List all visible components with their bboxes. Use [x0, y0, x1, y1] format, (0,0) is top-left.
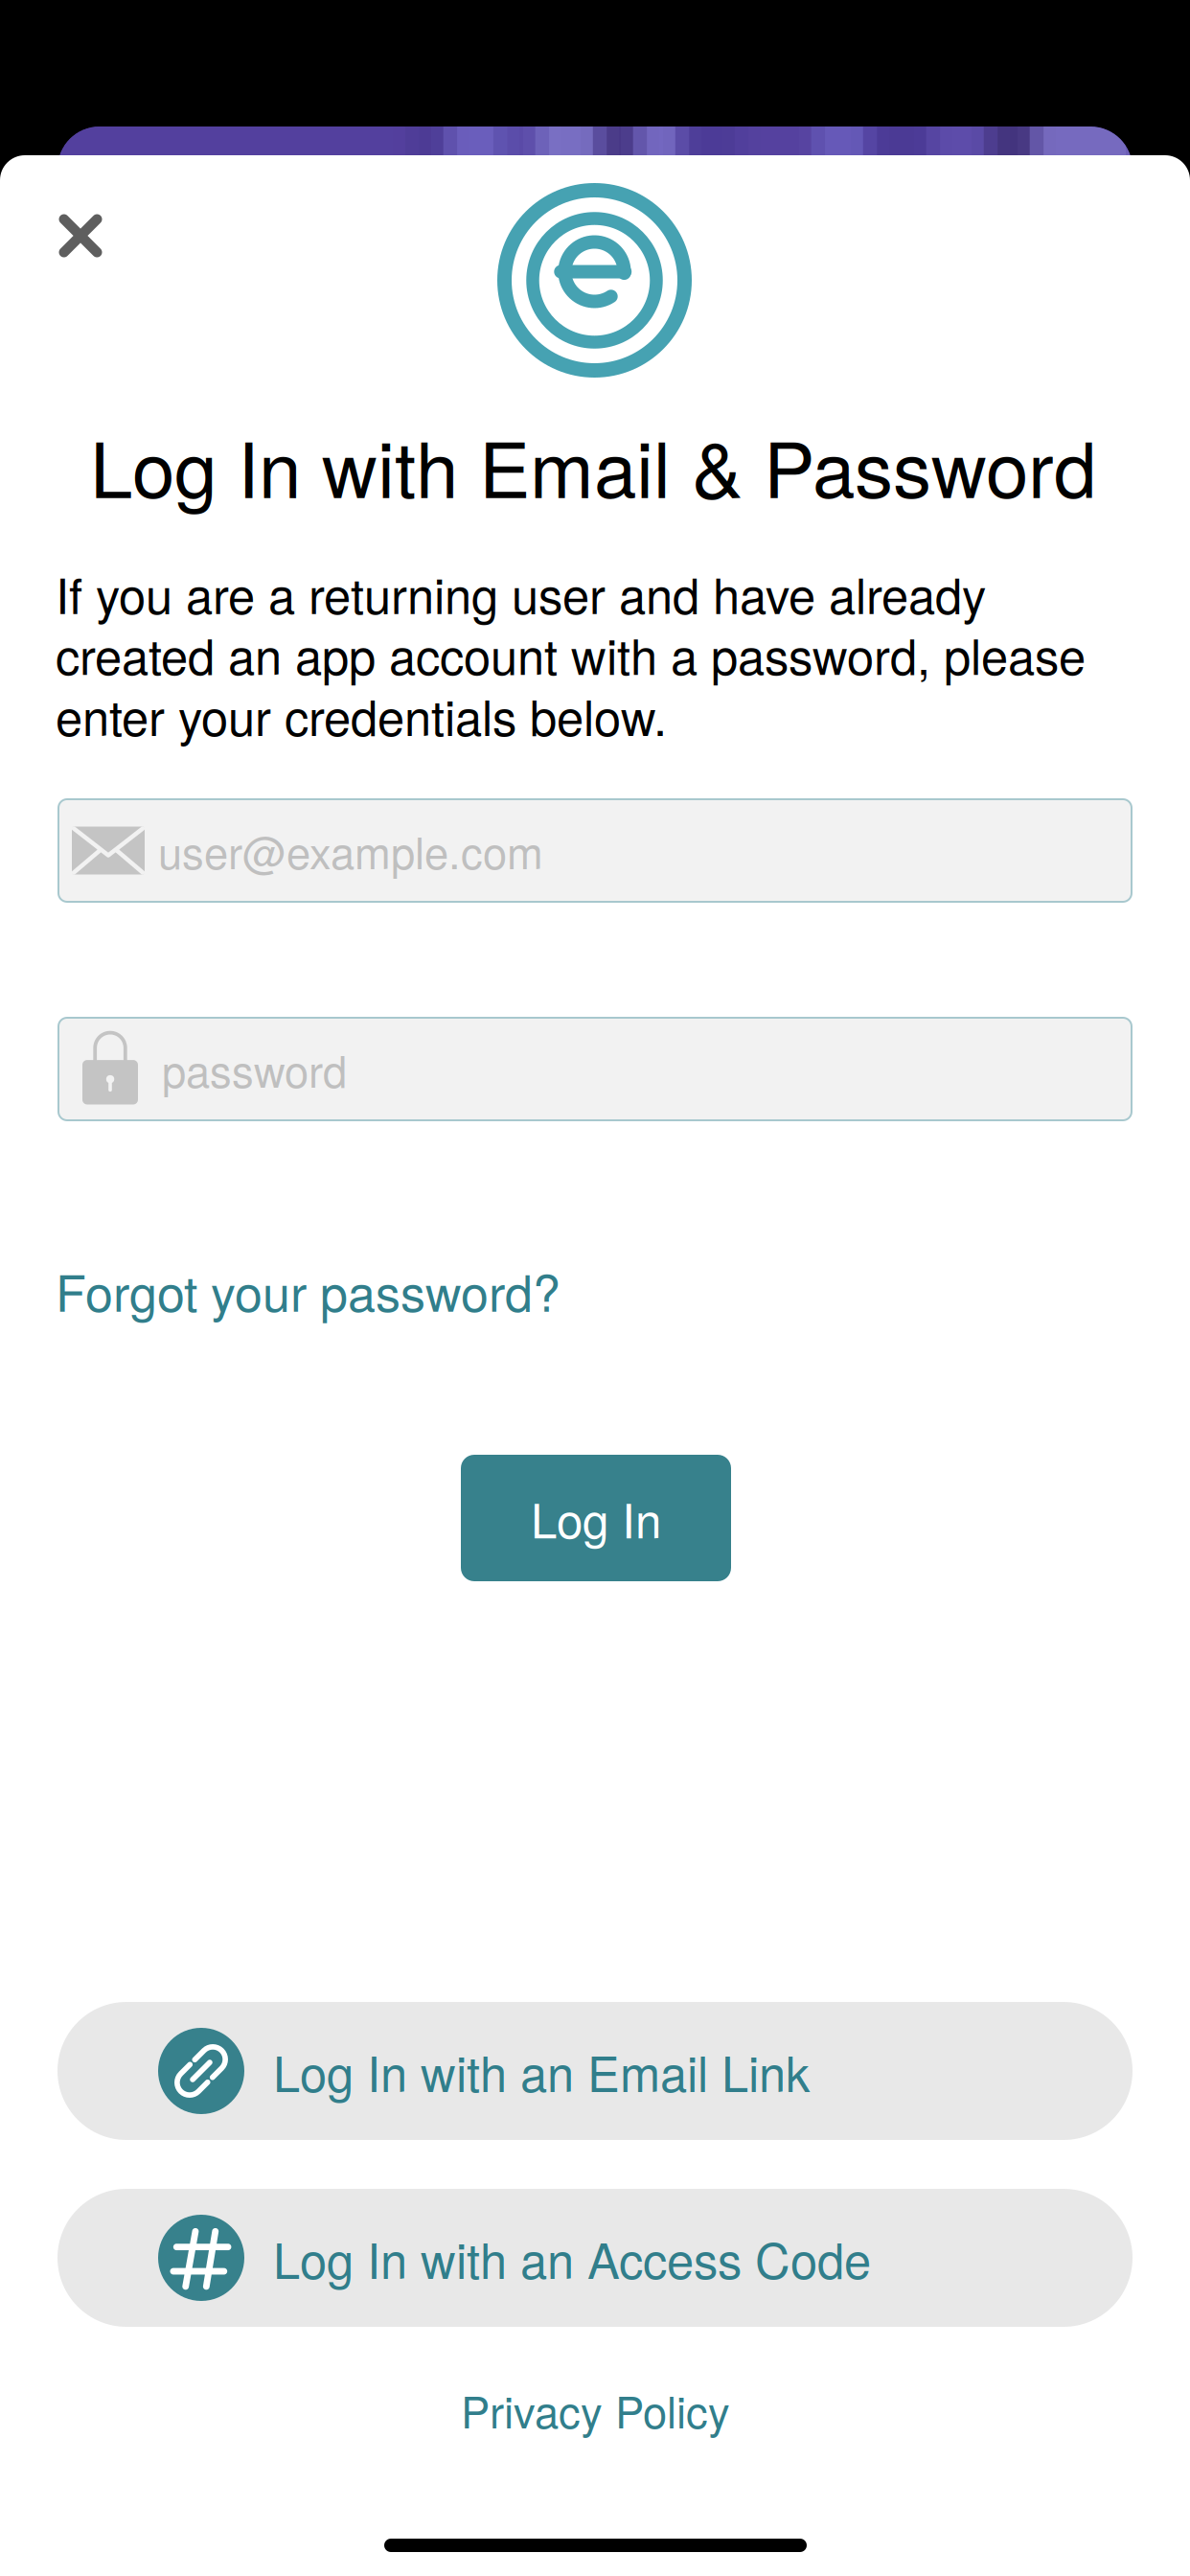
staticText: Log In with an Email Link — [273, 2036, 810, 2106]
button[interactable]: Forgot your password? — [56, 1254, 561, 1326]
staticText: password — [162, 1038, 347, 1100]
staticText: Log In — [531, 1484, 661, 1552]
staticText: Forgot your password? — [56, 1254, 561, 1326]
staticText: If you are a returning user and have alr… — [56, 563, 1086, 745]
staticText: Privacy Policy — [461, 2379, 730, 2441]
staticText: Log In with an Access Code — [273, 2223, 871, 2293]
staticText: Log In with Email & Password — [90, 410, 1096, 520]
staticText: user@example.com — [158, 819, 543, 882]
button[interactable]: Privacy Policy — [461, 2379, 730, 2441]
button[interactable]: Log In — [461, 1455, 731, 1581]
button[interactable]: Log In with an Access Code — [57, 2189, 1133, 2327]
button[interactable]: Close — [31, 186, 130, 286]
button[interactable]: Log In with an Email Link — [57, 2002, 1133, 2140]
